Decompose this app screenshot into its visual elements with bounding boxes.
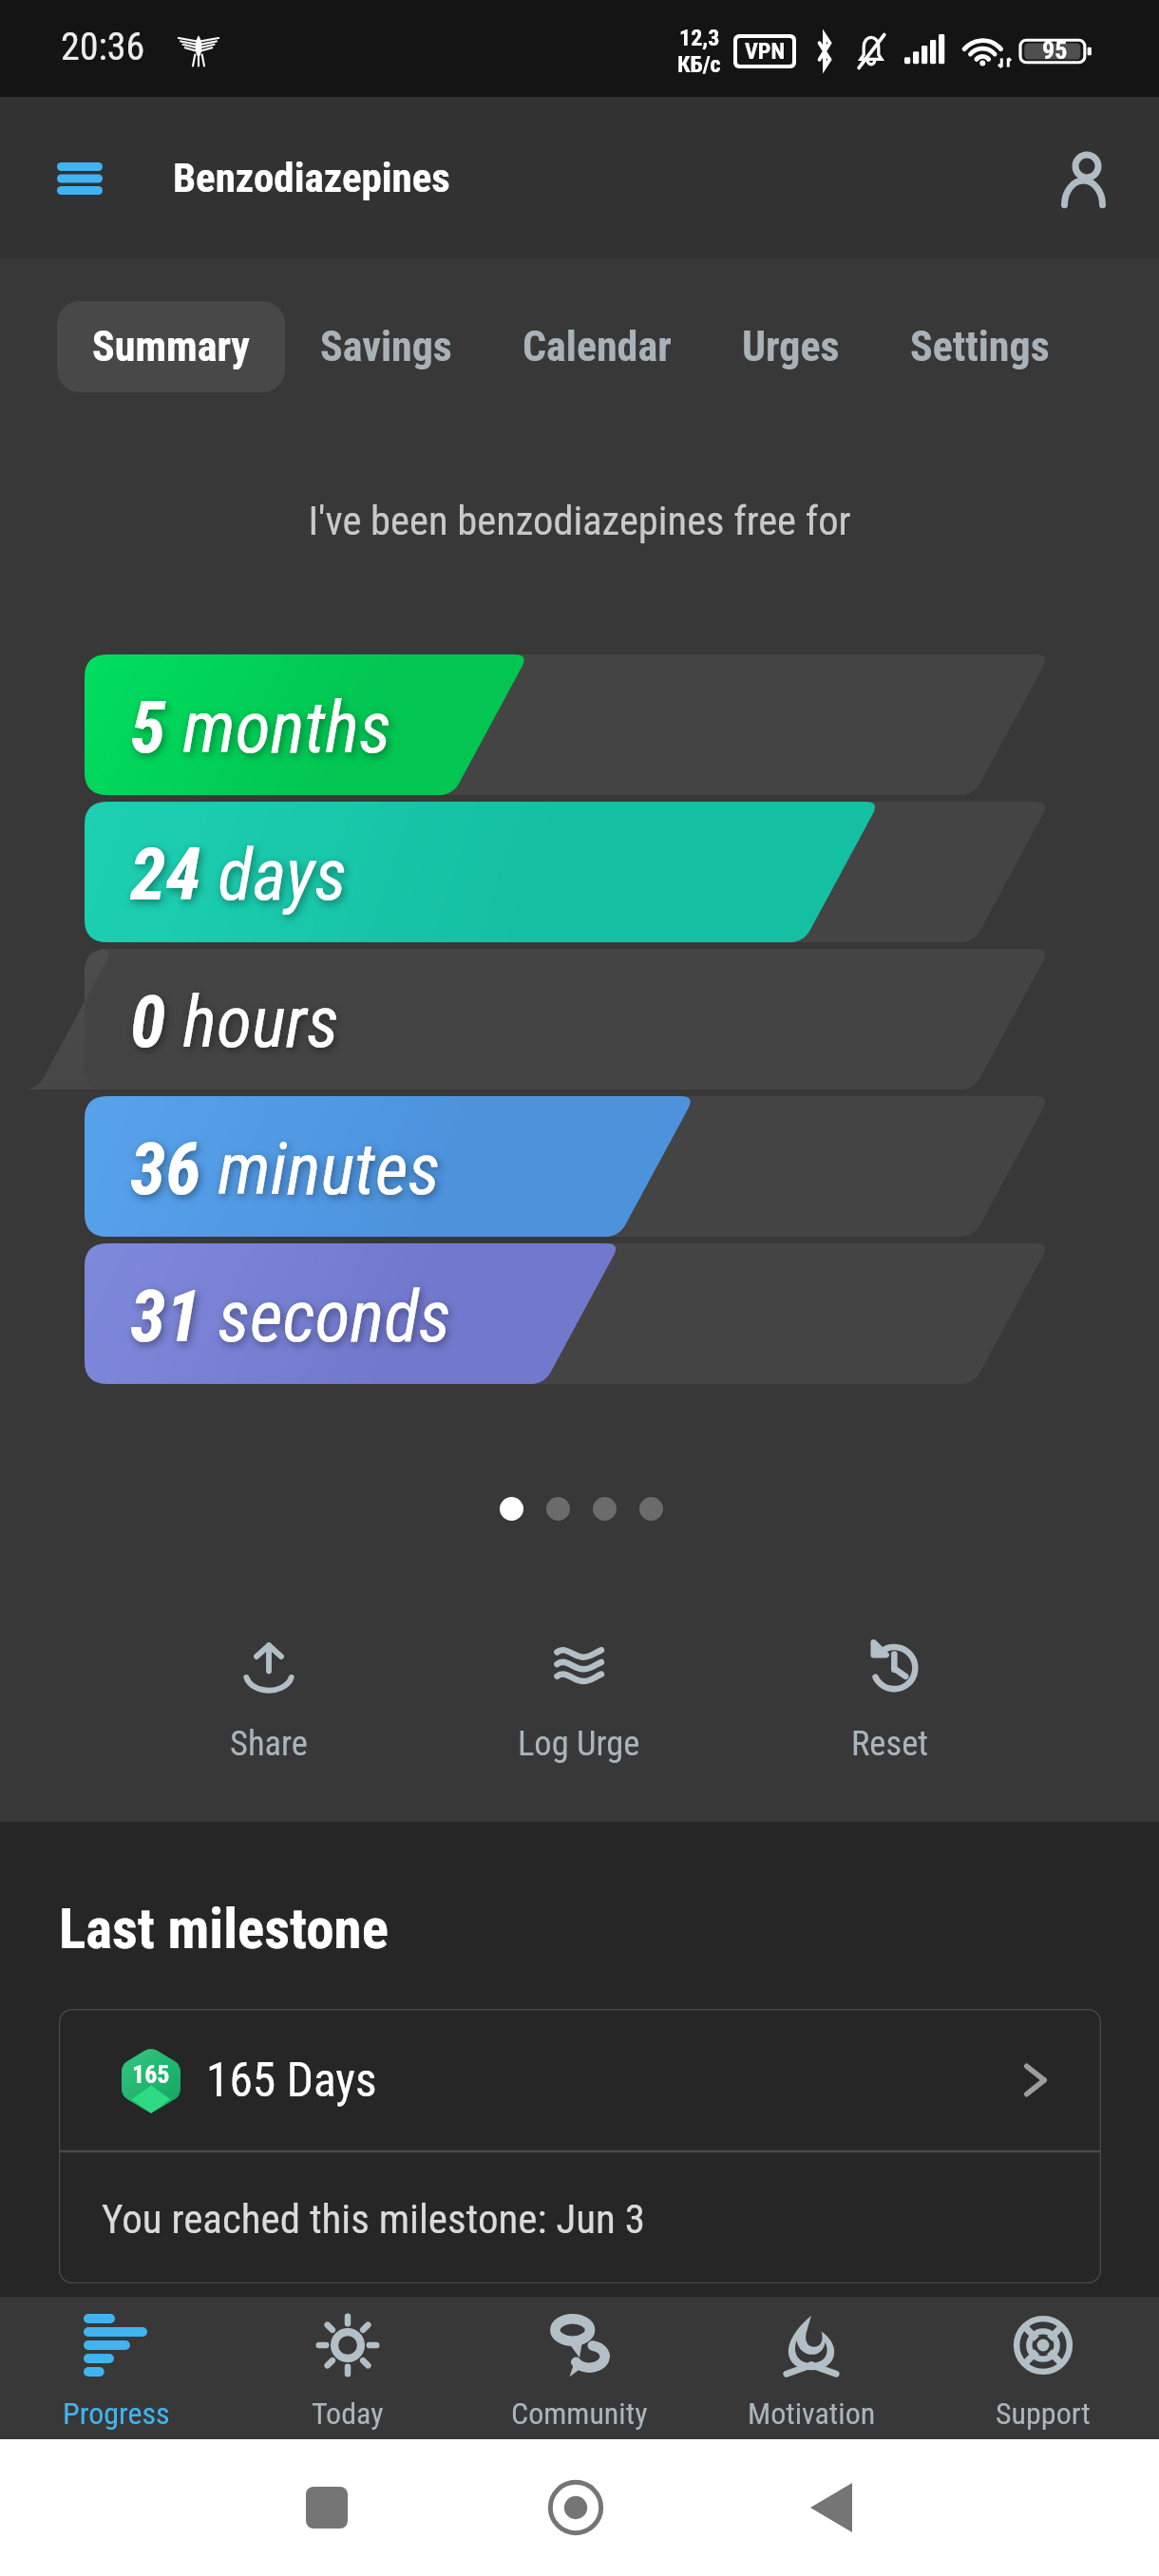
button[interactable]: Urges	[707, 301, 875, 392]
button[interactable]: Recent apps	[306, 2487, 348, 2529]
button[interactable]: Reset	[734, 1636, 1045, 1764]
button[interactable]: Account	[1039, 134, 1127, 221]
staticText: 0	[130, 979, 166, 1064]
button[interactable]: Share	[114, 1636, 424, 1764]
staticText: Settings	[910, 322, 1050, 371]
staticText: КБ/с	[677, 51, 721, 78]
staticText: Share	[230, 1723, 308, 1764]
staticText: 12,3	[679, 25, 720, 51]
staticText: Community	[511, 2396, 648, 2432]
button[interactable]: Progress	[0, 2297, 232, 2439]
staticText: You reached this milestone: Jun 3	[102, 2195, 645, 2243]
staticText: 36	[130, 1127, 201, 1211]
button[interactable]: Motivation	[695, 2297, 927, 2439]
staticText: Savings	[320, 322, 452, 371]
staticText: hours	[166, 979, 339, 1064]
button[interactable]: Today	[232, 2297, 464, 2439]
button[interactable]: Calendar	[487, 301, 707, 392]
staticText: Benzodiazepines	[173, 154, 450, 201]
button[interactable]: Back	[810, 2483, 852, 2532]
staticText: 20:36	[61, 25, 145, 69]
button[interactable]: Summary	[57, 301, 285, 392]
staticText: Last milestone	[59, 1896, 389, 1961]
staticText: Progress	[63, 2396, 170, 2432]
staticText: 95	[1042, 36, 1068, 65]
button[interactable]: Settings	[875, 301, 1085, 392]
staticText: Urges	[742, 322, 840, 371]
button[interactable]: Support	[927, 2297, 1159, 2439]
button[interactable]: Community	[464, 2297, 695, 2439]
staticText: Support	[996, 2396, 1091, 2432]
staticText: 165	[132, 2060, 170, 2089]
staticText: months	[166, 685, 391, 769]
staticText: VPN	[745, 38, 786, 65]
staticText: Reset	[851, 1723, 929, 1764]
staticText: Motivation	[748, 2396, 876, 2432]
staticText: days	[201, 832, 347, 917]
staticText: 5	[130, 685, 166, 769]
button[interactable]: Home	[548, 2480, 603, 2535]
staticText: 24	[130, 832, 201, 917]
staticText: Log Urge	[518, 1723, 640, 1764]
button[interactable]: Open navigation menu	[34, 132, 125, 223]
button[interactable]: Savings	[285, 301, 487, 392]
staticText: minutes	[201, 1127, 441, 1211]
staticText: I've been benzodiazepines free for	[0, 498, 1159, 545]
staticText: Today	[312, 2396, 384, 2432]
staticText: 31	[130, 1274, 201, 1358]
staticText: Summary	[92, 322, 250, 371]
button[interactable]: Log Urge	[424, 1636, 734, 1764]
staticText: seconds	[201, 1274, 451, 1358]
staticText: Calendar	[522, 322, 672, 371]
button[interactable]: 165	[59, 2009, 1101, 2151]
staticText: 165 Days	[206, 2053, 377, 2108]
